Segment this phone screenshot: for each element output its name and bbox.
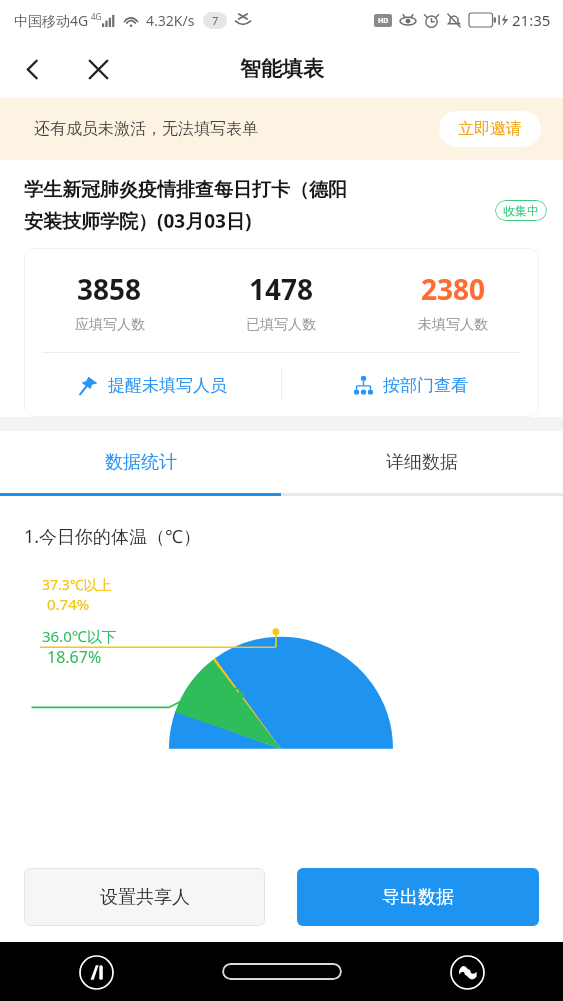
staticText: 18.67% [47, 646, 102, 668]
staticText: 1.今日你的体温（℃） [24, 524, 202, 549]
button[interactable]: 提醒未填写人员 [24, 353, 281, 417]
staticText: 2380 [421, 270, 486, 308]
staticText: 37.3℃以上 [42, 575, 112, 594]
button[interactable]: 收集中 [495, 200, 547, 221]
button[interactable]: 详细数据 [281, 431, 563, 493]
staticText: 还有成员未激活，无法填写表单 [34, 119, 258, 139]
button[interactable]: 导出数据 [297, 868, 539, 926]
button[interactable]: Back [8, 45, 56, 93]
staticText: 7 [212, 13, 219, 28]
staticText: 按部门查看 [383, 375, 468, 396]
staticText: 收集中 [503, 203, 539, 218]
staticText: 中国移动4G [14, 11, 89, 30]
staticText: 智能填表 [240, 56, 324, 82]
button[interactable]: Home [222, 963, 342, 980]
staticText: 0.74% [47, 594, 90, 614]
staticText: 3858 [77, 270, 142, 308]
staticText: HD [378, 16, 389, 26]
staticText: 学生新冠肺炎疫情排查每日打卡（德阳 安装技师学院）(03月03日) [24, 178, 487, 234]
button[interactable]: Close [74, 45, 122, 93]
staticText: 4.32K/s [146, 11, 195, 30]
staticText: 4G [91, 11, 102, 22]
button[interactable]: 设置共享人 [24, 868, 265, 926]
button[interactable]: Assistant [447, 952, 487, 992]
staticText: 应填写人数 [75, 316, 145, 334]
staticText: 未填写人数 [418, 316, 488, 334]
button[interactable]: Split screen [76, 952, 116, 992]
staticText: 设置共享人 [100, 886, 190, 909]
staticText: 导出数据 [382, 886, 454, 909]
staticText: 36.0℃以下 [42, 626, 117, 646]
staticText: 提醒未填写人员 [108, 375, 227, 396]
staticText: 已填写人数 [246, 316, 316, 334]
button[interactable]: 数据统计 [0, 431, 281, 493]
button[interactable]: 按部门查看 [282, 353, 539, 417]
staticText: 立即邀请 [458, 119, 522, 139]
staticText: 数据统计 [105, 451, 177, 474]
button[interactable]: 立即邀请 [439, 111, 541, 147]
staticText: 1478 [249, 270, 314, 308]
staticText: 21:35 [512, 10, 551, 30]
staticText: 详细数据 [386, 451, 458, 474]
